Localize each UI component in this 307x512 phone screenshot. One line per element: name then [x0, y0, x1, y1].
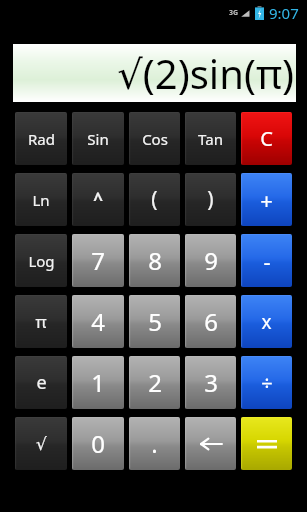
- staticText: .: [151, 427, 158, 460]
- button[interactable]: Rad: [15, 112, 67, 165]
- staticText: 6: [204, 305, 218, 338]
- button[interactable]: (: [129, 173, 180, 226]
- button[interactable]: Log: [15, 234, 67, 287]
- staticText: 3G: [229, 8, 239, 18]
- staticText: -: [263, 246, 271, 276]
- staticText: ): [207, 185, 214, 214]
- button[interactable]: Sin: [72, 112, 124, 165]
- button[interactable]: 2: [129, 356, 180, 409]
- button[interactable]: ^: [72, 173, 124, 226]
- staticText: ^: [93, 188, 103, 211]
- staticText: 9: [204, 244, 218, 277]
- staticText: 5: [148, 305, 162, 338]
- button[interactable]: .: [129, 417, 180, 470]
- button[interactable]: Equals: [241, 417, 292, 470]
- button[interactable]: -: [241, 234, 292, 287]
- button[interactable]: 5: [129, 295, 180, 348]
- button[interactable]: Cos: [129, 112, 180, 165]
- staticText: 8: [148, 244, 162, 277]
- button[interactable]: π: [15, 295, 67, 348]
- button[interactable]: 3: [185, 356, 236, 409]
- staticText: Tan: [198, 129, 223, 149]
- staticText: 0: [91, 427, 105, 460]
- staticText: 3: [204, 366, 218, 399]
- button[interactable]: 9: [185, 234, 236, 287]
- button[interactable]: 0: [72, 417, 124, 470]
- button[interactable]: Backspace: [185, 417, 236, 470]
- staticText: e: [36, 370, 47, 395]
- button[interactable]: Tan: [185, 112, 236, 165]
- staticText: √: [36, 434, 47, 454]
- staticText: x: [261, 309, 272, 335]
- button[interactable]: +: [241, 173, 292, 226]
- button[interactable]: 7: [72, 234, 124, 287]
- staticText: Sin: [87, 129, 109, 149]
- staticText: Rad: [28, 129, 55, 149]
- staticText: √(2)sin(π): [117, 46, 294, 100]
- button[interactable]: ÷: [241, 356, 292, 409]
- button[interactable]: 8: [129, 234, 180, 287]
- button[interactable]: 4: [72, 295, 124, 348]
- staticText: 4: [91, 305, 105, 338]
- staticText: Ln: [32, 190, 50, 210]
- button[interactable]: Square root: [15, 417, 67, 470]
- staticText: C: [260, 125, 273, 152]
- button[interactable]: e: [15, 356, 67, 409]
- staticText: 2: [148, 366, 162, 399]
- button[interactable]: ): [185, 173, 236, 226]
- button[interactable]: 6: [185, 295, 236, 348]
- staticText: 9:07: [269, 3, 299, 23]
- staticText: π: [35, 310, 47, 333]
- button[interactable]: 1: [72, 356, 124, 409]
- staticText: 7: [91, 244, 105, 277]
- staticText: 1: [91, 366, 105, 399]
- button[interactable]: C: [241, 112, 292, 165]
- button[interactable]: x: [241, 295, 292, 348]
- staticText: Cos: [142, 129, 168, 149]
- staticText: ÷: [261, 369, 273, 396]
- staticText: +: [260, 185, 273, 215]
- button[interactable]: Ln: [15, 173, 67, 226]
- staticText: Log: [28, 251, 55, 271]
- staticText: (: [151, 185, 158, 214]
